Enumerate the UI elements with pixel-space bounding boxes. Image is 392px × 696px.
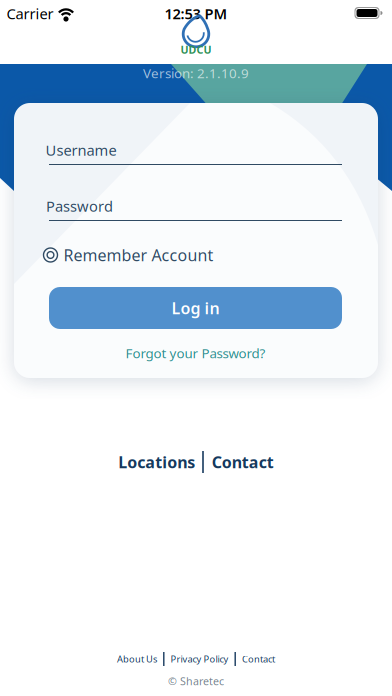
- button[interactable]: About Us: [117, 653, 163, 665]
- staticText: Contact: [242, 653, 275, 665]
- staticText: Contact: [212, 451, 274, 473]
- button[interactable]: Forgot your Password?: [125, 344, 265, 362]
- staticText: Version: 2.1.10.9: [143, 64, 249, 82]
- staticText: 12:53 PM: [164, 4, 227, 23]
- staticText: © Sharetec: [168, 674, 224, 688]
- staticText: Forgot your Password?: [125, 344, 265, 362]
- staticText: Password: [46, 196, 113, 216]
- staticText: Locations: [118, 451, 195, 473]
- button[interactable]: Privacy Policy: [164, 653, 234, 665]
- button[interactable]: Contact: [204, 451, 274, 473]
- button[interactable]: Log in: [49, 287, 342, 329]
- button[interactable]: Locations: [118, 451, 202, 473]
- button[interactable]: Remember Account: [42, 244, 213, 266]
- staticText: Carrier: [6, 4, 53, 23]
- button[interactable]: Contact: [236, 653, 275, 665]
- staticText: Privacy Policy: [170, 653, 228, 665]
- staticText: Username: [45, 140, 116, 160]
- staticText: Remember Account: [63, 244, 213, 266]
- staticText: About Us: [117, 653, 157, 665]
- staticText: Log in: [171, 297, 219, 319]
- staticText: UDCU: [180, 42, 211, 57]
